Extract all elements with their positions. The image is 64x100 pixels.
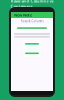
- staticText: Rows & Columns: [20, 19, 43, 23]
- button[interactable]: [23, 50, 41, 57]
- staticText: New Note: [14, 12, 32, 18]
- button[interactable]: [23, 40, 41, 47]
- staticText: Rows and Columns vs Containers: [10, 0, 53, 9]
